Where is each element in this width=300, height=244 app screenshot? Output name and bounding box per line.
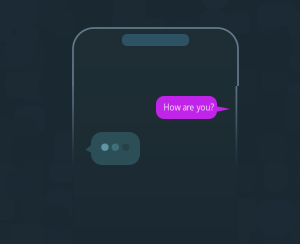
staticText: How are you? <box>163 102 213 113</box>
button[interactable]: How are you? <box>156 96 230 119</box>
